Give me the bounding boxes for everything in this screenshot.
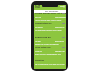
button[interactable]: Lorem ipsum dolor sit amet bbox=[34, 13, 66, 22]
staticText: plicabo ne bbox=[55, 50, 65, 53]
staticText: Santium bbox=[35, 26, 43, 29]
staticText: Lorem ipsum dolor sit amet bbox=[35, 12, 67, 15]
button[interactable]: Voluptatem ac bbox=[34, 23, 66, 32]
staticText: doloremq bbox=[55, 26, 65, 29]
staticText: inventore bbox=[55, 40, 64, 43]
staticText: Sunt ex bbox=[35, 50, 42, 53]
staticText: 9:41 bbox=[35, 5, 41, 9]
staticText: Enim ipsam voluptatem qui bbox=[35, 53, 61, 56]
staticText: Ritatis et quasi architecto bbox=[35, 43, 59, 46]
staticText: Sit aspernatur aut odit aut fugit sed qu… bbox=[35, 63, 67, 66]
staticText: Laudantium totam rem aper bbox=[35, 29, 62, 32]
staticText: perspiciatis bbox=[55, 16, 66, 19]
staticText: MY ACCOUNT bbox=[45, 10, 59, 13]
staticText: Atae vitae dic bbox=[35, 46, 51, 49]
button[interactable]: Atae vitae dic bbox=[34, 47, 66, 56]
staticText: Ab illo bbox=[35, 40, 41, 43]
button[interactable]: Eaque ipsa qu bbox=[34, 37, 66, 46]
staticText: Voluptatem ac bbox=[35, 22, 52, 25]
staticText: Unde omnis iste natus error bbox=[35, 19, 62, 22]
staticText: ▬▬▮ bbox=[60, 5, 65, 7]
staticText: Oluptas bbox=[35, 59, 44, 62]
staticText: Eaque ipsa qu bbox=[35, 36, 51, 39]
staticText: Sed ut bbox=[35, 16, 41, 19]
